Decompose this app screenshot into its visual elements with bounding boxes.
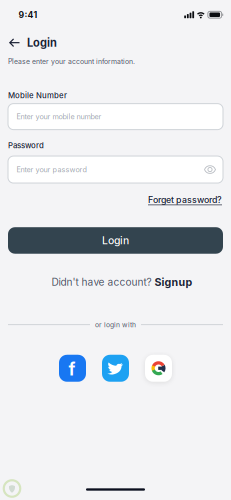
staticText: Mobile Number: [8, 91, 67, 100]
button[interactable]: Login with Google: [145, 355, 172, 382]
staticText: f: [68, 359, 75, 380]
button[interactable]: Back: [9, 38, 20, 47]
staticText: or login with: [95, 321, 136, 329]
staticText: Password: [8, 141, 44, 150]
button[interactable]: Show password: [204, 165, 223, 174]
staticText: Forget password?: [148, 195, 222, 205]
button[interactable]: Login: [8, 227, 223, 254]
staticText: Didn't have account?: [51, 276, 151, 288]
staticText: Enter your mobile number: [16, 112, 101, 121]
staticText: Signup: [154, 276, 192, 289]
button[interactable]: Signup: [154, 276, 192, 289]
staticText: Enter your password: [16, 165, 86, 174]
staticText: Login: [27, 36, 57, 49]
staticText: Login: [102, 234, 129, 247]
button[interactable]: Login with Twitter: [102, 355, 129, 382]
staticText: Please enter your account information.: [8, 57, 135, 66]
staticText: 9:41: [18, 9, 37, 20]
button[interactable]: Login with Facebook: [59, 355, 86, 382]
button[interactable]: Forget password?: [148, 195, 222, 205]
